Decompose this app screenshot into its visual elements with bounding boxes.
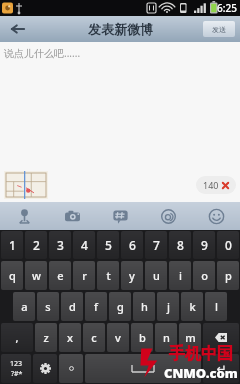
staticText: j bbox=[167, 299, 170, 314]
button[interactable]: p bbox=[217, 261, 239, 290]
staticText: m bbox=[185, 330, 196, 345]
staticText: y bbox=[129, 268, 135, 283]
staticText: 7 bbox=[153, 237, 160, 253]
staticText: s bbox=[45, 299, 51, 314]
button[interactable]: m bbox=[179, 323, 201, 352]
staticText: v bbox=[115, 330, 121, 345]
button[interactable]: Back bbox=[0, 16, 36, 42]
button[interactable]: Backspace bbox=[203, 323, 239, 352]
button[interactable]: b bbox=[131, 323, 153, 352]
button[interactable]: 6 bbox=[121, 231, 143, 259]
staticText: t bbox=[106, 268, 111, 283]
staticText: n bbox=[163, 330, 170, 345]
button[interactable]: 发送 bbox=[203, 21, 235, 37]
staticText: 4 bbox=[81, 237, 88, 253]
button[interactable]: 2 bbox=[25, 231, 47, 259]
button[interactable]: o bbox=[193, 261, 215, 290]
staticText: i bbox=[179, 268, 182, 283]
button[interactable]: k bbox=[181, 292, 203, 321]
button[interactable]: Period bbox=[59, 354, 83, 383]
staticText: 1 bbox=[9, 237, 16, 253]
button[interactable]: 0 bbox=[217, 231, 239, 259]
staticText: r bbox=[82, 268, 87, 283]
button[interactable]: v bbox=[107, 323, 129, 352]
staticText: CNMO.com bbox=[164, 364, 238, 382]
button[interactable]: u bbox=[145, 261, 167, 290]
button[interactable]: Camera bbox=[48, 202, 96, 230]
staticText: , bbox=[15, 330, 19, 345]
staticText: 140 bbox=[203, 179, 219, 191]
button[interactable]: q bbox=[1, 261, 23, 290]
button[interactable]: g bbox=[109, 292, 131, 321]
staticText: 2 bbox=[33, 237, 40, 253]
button[interactable]: Settings bbox=[33, 354, 57, 383]
button[interactable]: r bbox=[73, 261, 95, 290]
button[interactable]: 1 bbox=[1, 231, 23, 259]
staticText: ?#* bbox=[11, 369, 23, 379]
staticText: 5 bbox=[105, 237, 112, 253]
button[interactable]: 7 bbox=[145, 231, 167, 259]
button[interactable]: Location bbox=[0, 202, 48, 230]
staticText: o bbox=[201, 268, 208, 283]
button[interactable]: 3 bbox=[49, 231, 71, 259]
staticText: 手机中国 bbox=[169, 344, 233, 364]
button[interactable]: t bbox=[97, 261, 119, 290]
staticText: g bbox=[117, 299, 124, 314]
button[interactable]: f bbox=[85, 292, 107, 321]
button[interactable]: Mention bbox=[144, 202, 192, 230]
button[interactable]: Space bbox=[85, 354, 201, 383]
staticText: 6:25 bbox=[217, 1, 237, 15]
button[interactable]: 8 bbox=[169, 231, 191, 259]
staticText: p bbox=[225, 268, 232, 283]
button[interactable]: s bbox=[37, 292, 59, 321]
staticText: 说点儿什么吧...... bbox=[4, 46, 81, 60]
staticText: 9 bbox=[201, 237, 208, 253]
button[interactable]: Topic bbox=[96, 202, 144, 230]
staticText: c bbox=[91, 330, 97, 345]
staticText: u bbox=[153, 268, 160, 283]
staticText: e bbox=[57, 268, 64, 283]
staticText: 0 bbox=[225, 237, 232, 253]
button[interactable]: c bbox=[83, 323, 105, 352]
staticText: 发送 bbox=[212, 25, 226, 34]
staticText: q bbox=[9, 268, 16, 283]
button[interactable]: w bbox=[25, 261, 47, 290]
button[interactable]: 5 bbox=[97, 231, 119, 259]
button[interactable]: a bbox=[13, 292, 35, 321]
staticText: w bbox=[32, 268, 41, 283]
staticText: 123 bbox=[10, 359, 23, 369]
button[interactable]: Emoji bbox=[192, 202, 240, 230]
button[interactable]: e bbox=[49, 261, 71, 290]
button[interactable]: d bbox=[61, 292, 83, 321]
button[interactable]: y bbox=[121, 261, 143, 290]
staticText: 发表新微博 bbox=[88, 21, 153, 37]
button[interactable]: 4 bbox=[73, 231, 95, 259]
staticText: ↵ bbox=[216, 362, 227, 376]
button[interactable]: , bbox=[1, 323, 33, 352]
staticText: x bbox=[67, 330, 73, 345]
staticText: 6 bbox=[129, 237, 136, 253]
button[interactable]: z bbox=[35, 323, 57, 352]
button[interactable]: 123 bbox=[1, 354, 31, 383]
button[interactable]: Attached image bbox=[4, 171, 48, 199]
button[interactable]: l bbox=[205, 292, 227, 321]
button[interactable]: x bbox=[59, 323, 81, 352]
staticText: a bbox=[21, 299, 28, 314]
staticText: b bbox=[139, 330, 146, 345]
button[interactable]: j bbox=[157, 292, 179, 321]
staticText: 3 bbox=[57, 237, 64, 253]
button[interactable]: i bbox=[169, 261, 191, 290]
staticText: l bbox=[215, 299, 218, 314]
staticText: h bbox=[141, 299, 148, 314]
staticText: d bbox=[69, 299, 76, 314]
button[interactable]: 9 bbox=[193, 231, 215, 259]
staticText: f bbox=[94, 299, 98, 314]
staticText: 8 bbox=[177, 237, 184, 253]
button[interactable]: h bbox=[133, 292, 155, 321]
button[interactable]: n bbox=[155, 323, 177, 352]
staticText: z bbox=[43, 330, 49, 345]
button[interactable]: ↵ bbox=[203, 354, 239, 383]
button[interactable]: 140 bbox=[203, 179, 229, 191]
staticText: k bbox=[189, 299, 196, 314]
